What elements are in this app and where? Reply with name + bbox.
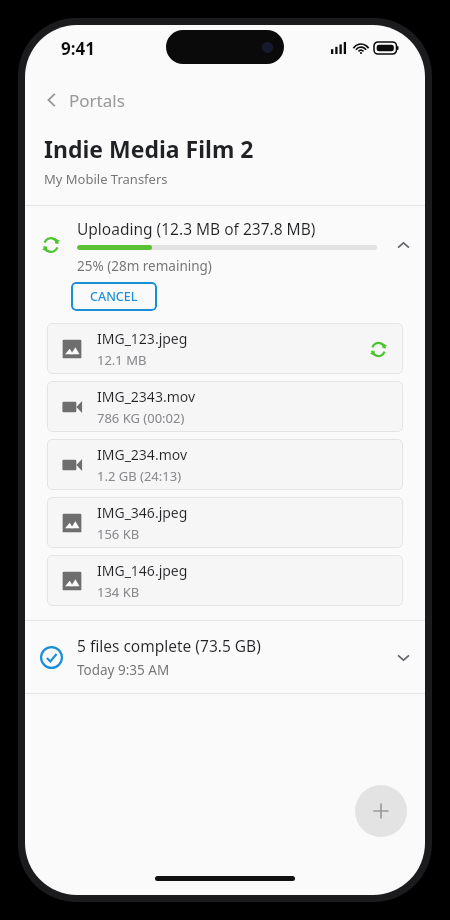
button[interactable]: Collapse <box>381 218 425 272</box>
staticText: IMG_146.jpeg <box>97 561 188 580</box>
button[interactable]: Add <box>355 785 407 837</box>
staticText: IMG_123.jpeg <box>97 329 188 348</box>
staticText: 5 files complete (73.5 GB) <box>77 635 261 656</box>
staticText: 25% (28m remaining) <box>77 257 212 275</box>
staticText: 9:41 <box>61 37 95 60</box>
staticText: 156 KB <box>97 525 140 543</box>
staticText: 12.1 MB <box>97 351 147 369</box>
staticText: IMG_2343.mov <box>97 387 196 406</box>
staticText: CANCEL <box>90 288 138 305</box>
staticText: Today 9:35 AM <box>77 661 170 679</box>
button[interactable]: 5 files complete (73.5 GB) <box>25 621 425 693</box>
staticText: 134 KB <box>97 583 140 601</box>
button[interactable]: IMG_123.jpeg <box>47 323 403 374</box>
staticText: My Mobile Transfers <box>44 170 168 188</box>
staticText: Indie Media Film 2 <box>44 133 254 164</box>
button[interactable]: Portals <box>25 85 425 115</box>
button[interactable]: IMG_146.jpeg <box>47 555 403 606</box>
button[interactable]: IMG_2343.mov <box>47 381 403 432</box>
staticText: 786 KG (00:02) <box>97 409 185 427</box>
staticText: Portals <box>69 89 125 112</box>
staticText: 1.2 GB (24:13) <box>97 467 182 485</box>
staticText: IMG_234.mov <box>97 445 188 464</box>
staticText: IMG_346.jpeg <box>97 503 188 522</box>
staticText: Uploading (12.3 MB of 237.8 MB) <box>77 218 316 239</box>
button[interactable]: IMG_346.jpeg <box>47 497 403 548</box>
button[interactable]: CANCEL <box>71 282 157 311</box>
button[interactable]: IMG_234.mov <box>47 439 403 490</box>
